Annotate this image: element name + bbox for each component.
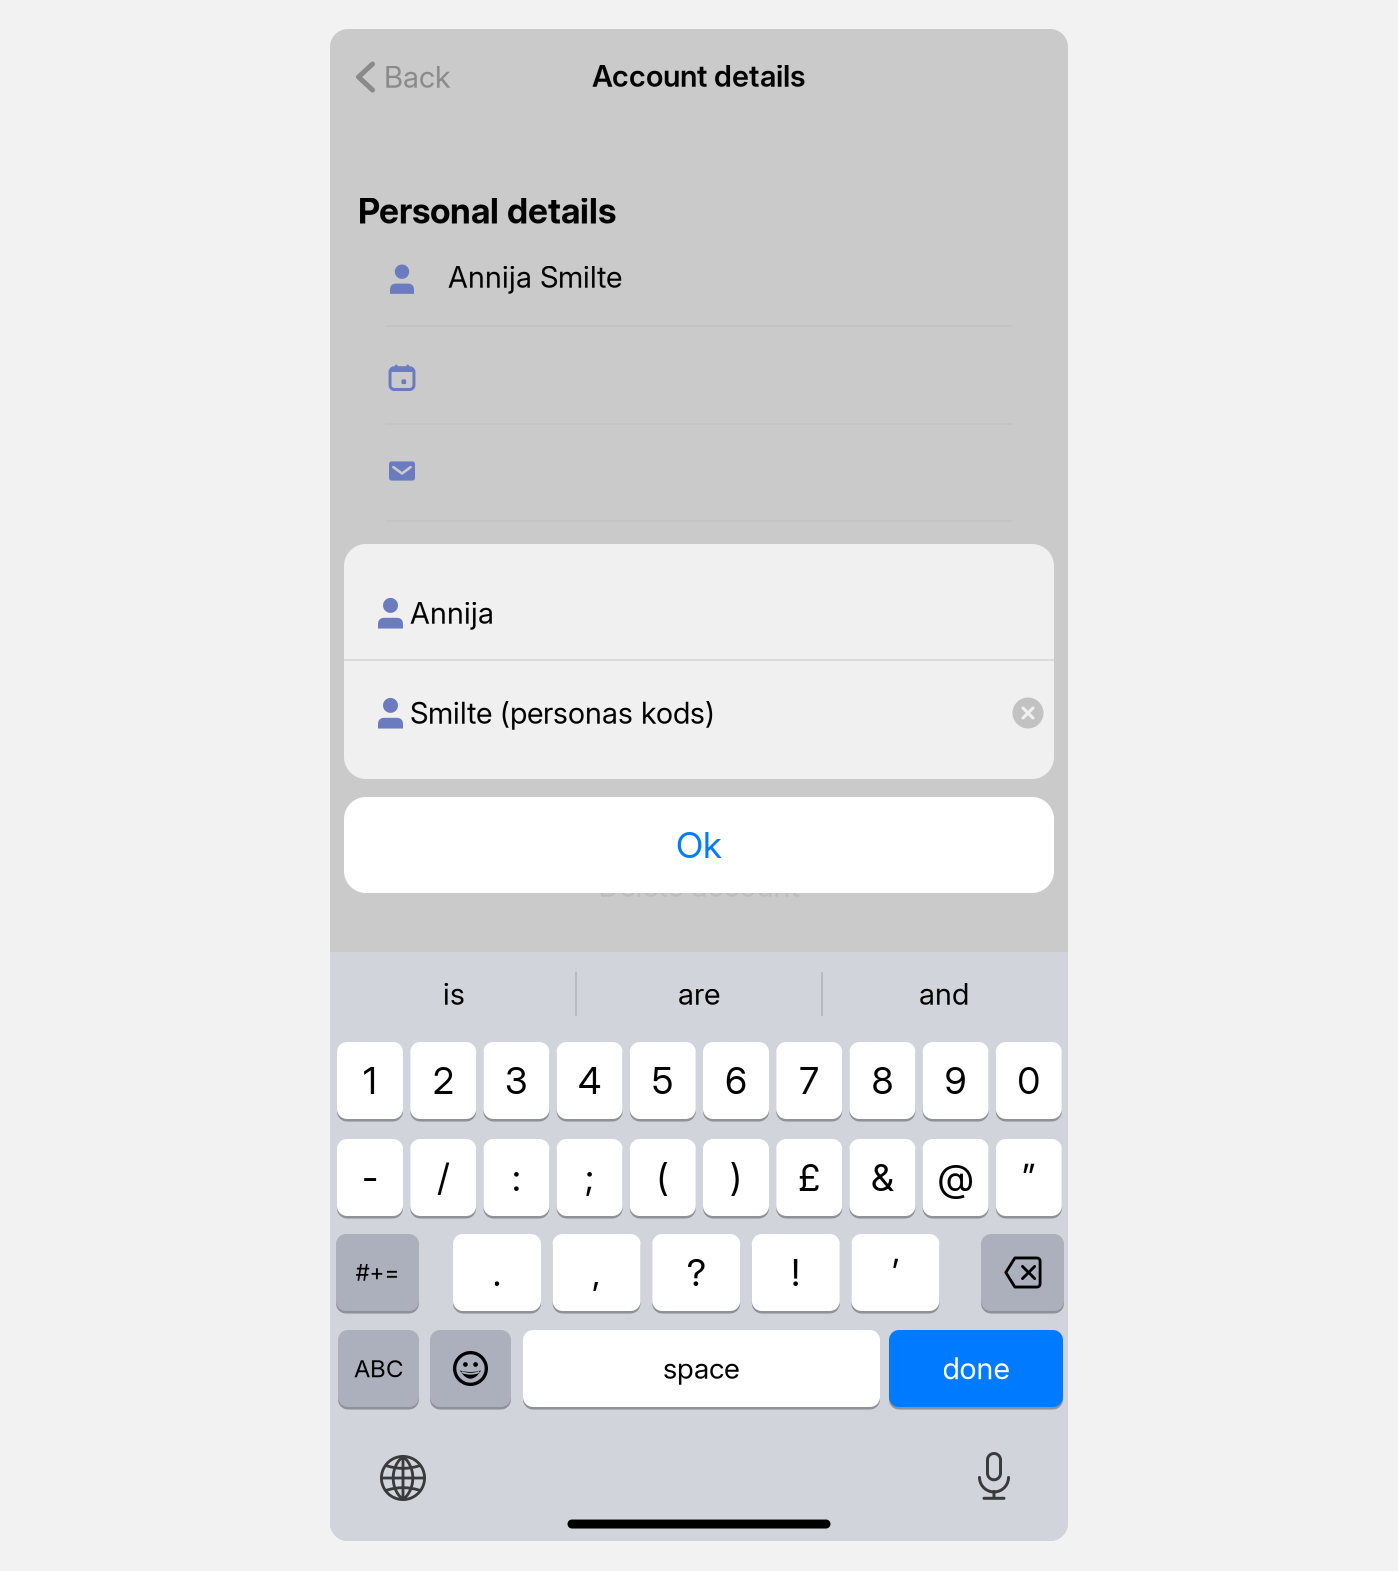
staticText: Annija Smilte: [448, 259, 622, 295]
staticText: 8: [871, 1058, 893, 1103]
staticText: !: [791, 1250, 800, 1295]
button[interactable]: ,: [553, 1234, 641, 1316]
button[interactable]: Back: [347, 49, 497, 105]
staticText: 4: [578, 1058, 601, 1103]
staticText: Account details: [592, 58, 806, 94]
staticText: Back: [384, 59, 451, 95]
staticText: 0: [1017, 1058, 1040, 1103]
button[interactable]: ’: [851, 1234, 939, 1316]
button[interactable]: 8: [849, 1042, 915, 1124]
button[interactable]: /: [410, 1139, 476, 1221]
button[interactable]: @: [923, 1139, 989, 1221]
button[interactable]: 3: [483, 1042, 549, 1124]
staticText: (: [657, 1155, 669, 1200]
button[interactable]: !: [752, 1234, 840, 1316]
staticText: and: [919, 976, 969, 1012]
staticText: done: [942, 1351, 1009, 1386]
button[interactable]: -: [337, 1139, 403, 1221]
staticText: Personal details: [358, 190, 616, 232]
button[interactable]: .: [453, 1234, 541, 1316]
button[interactable]: 1: [337, 1042, 403, 1124]
staticText: Ok: [676, 823, 722, 867]
staticText: 5: [652, 1058, 674, 1103]
button[interactable]: done: [330, 952, 1068, 1541]
staticText: 6: [725, 1058, 747, 1103]
staticText: 7: [799, 1058, 819, 1103]
button[interactable]: Ok: [344, 797, 1054, 893]
button[interactable]: ?: [652, 1234, 740, 1316]
staticText: ABC: [354, 1354, 403, 1383]
button[interactable]: are: [582, 951, 816, 1037]
button[interactable]: ): [703, 1139, 769, 1221]
button[interactable]: Annija: [344, 555, 1054, 671]
staticText: Delete account: [598, 868, 799, 904]
staticText: are: [678, 976, 720, 1012]
staticText: ’: [891, 1250, 899, 1295]
staticText: 9: [945, 1058, 967, 1103]
button[interactable]: Next keyboard: [380, 1455, 426, 1501]
staticText: ”: [1022, 1155, 1036, 1200]
staticText: ;: [585, 1155, 594, 1200]
staticText: .: [492, 1250, 501, 1295]
staticText: &: [871, 1155, 894, 1200]
staticText: #+=: [355, 1259, 399, 1286]
button[interactable]: 9: [923, 1042, 989, 1124]
button[interactable]: ;: [557, 1139, 623, 1221]
staticText: is: [443, 976, 465, 1012]
button[interactable]: 6: [703, 1042, 769, 1124]
staticText: Annija: [410, 595, 494, 631]
button[interactable]: (: [630, 1139, 696, 1221]
button[interactable]: 7: [776, 1042, 842, 1124]
staticText: 2: [433, 1058, 454, 1103]
staticText: :: [512, 1155, 521, 1200]
button[interactable]: space: [330, 952, 1068, 1541]
button[interactable]: &: [849, 1139, 915, 1221]
staticText: -: [362, 1155, 378, 1200]
button[interactable]: Clear text: [1012, 697, 1043, 728]
staticText: Smilte (personas kods): [410, 695, 715, 731]
staticText: @: [938, 1155, 974, 1200]
button[interactable]: is: [337, 951, 571, 1037]
staticText: space: [663, 1352, 740, 1385]
button[interactable]: 5: [630, 1042, 696, 1124]
staticText: ,: [592, 1250, 601, 1295]
staticText: ): [730, 1155, 742, 1200]
staticText: ?: [687, 1250, 706, 1295]
button[interactable]: ”: [996, 1139, 1062, 1221]
button[interactable]: Smilte (personas kods): [344, 653, 1054, 772]
button[interactable]: £: [776, 1139, 842, 1221]
button[interactable]: 4: [557, 1042, 623, 1124]
staticText: £: [798, 1155, 820, 1200]
button[interactable]: #+=: [336, 1234, 419, 1316]
staticText: /: [437, 1155, 449, 1200]
button[interactable]: Dictation: [978, 1452, 1010, 1500]
button[interactable]: Emoji keyboard: [330, 952, 1068, 1541]
staticText: 3: [505, 1058, 528, 1103]
button[interactable]: 2: [410, 1042, 476, 1124]
button[interactable]: Delete: [330, 952, 1068, 1541]
button[interactable]: and: [827, 951, 1061, 1037]
button[interactable]: ABC: [330, 952, 1068, 1541]
button[interactable]: 0: [996, 1042, 1062, 1124]
button[interactable]: :: [483, 1139, 549, 1221]
staticText: 1: [363, 1058, 377, 1103]
